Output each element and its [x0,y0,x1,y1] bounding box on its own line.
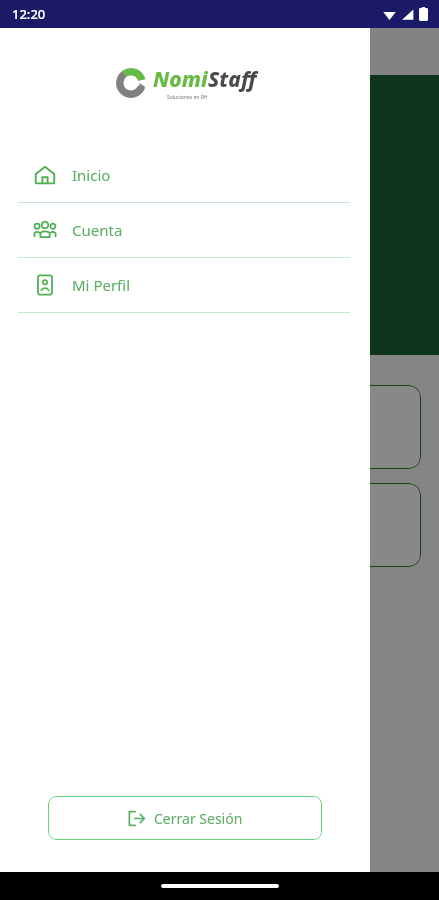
staticText: Cerrar Sesión [154,809,243,828]
button[interactable]: Documentos [20,225,419,281]
staticText: Staff [208,65,257,94]
other: Cuenta [34,219,56,241]
other: Mi Perfil [34,274,56,296]
button[interactable]: Entrada [18,483,421,567]
button[interactable]: Cerrar Sesión [48,796,322,840]
staticText: Cuenta [72,220,123,240]
staticText: Soluciones en RH [167,94,208,101]
button[interactable]: Inicio [0,148,370,202]
staticText: Documentos [90,233,191,255]
staticText: Mi Perfil [72,275,131,295]
button[interactable]: Cuenta [0,203,370,257]
other: Cerrar Sesión [128,810,145,827]
staticText: Inicio [72,165,111,185]
staticText: 12:20 [12,5,46,23]
button[interactable]: Entrada [18,385,421,469]
staticText: Nomi [153,65,208,94]
other: Inicio [34,164,56,186]
button[interactable]: Mi Perfil [0,258,370,312]
